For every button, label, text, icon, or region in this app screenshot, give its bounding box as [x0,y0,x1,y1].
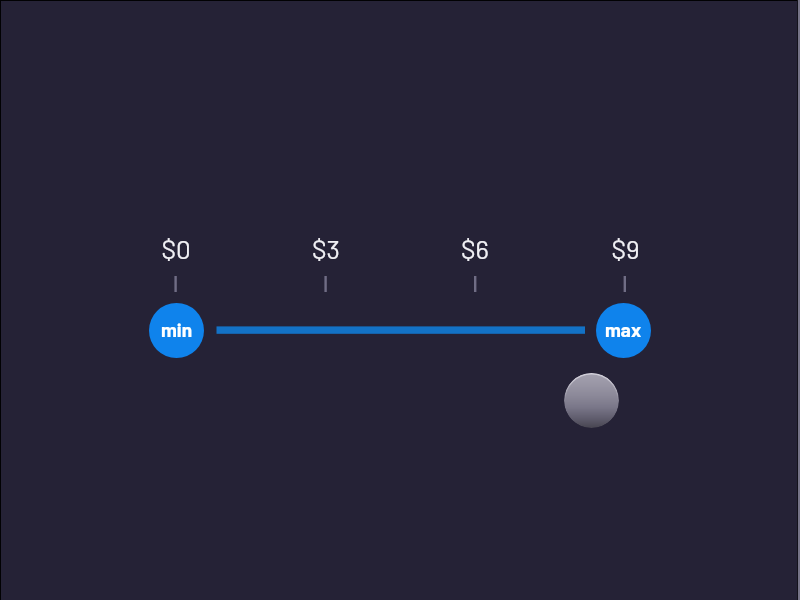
staticText: $0 [161,233,191,264]
button[interactable]: min [149,303,204,358]
staticText: min [161,318,193,341]
button[interactable]: Drag handle [564,373,619,428]
staticText: $6 [461,233,489,264]
staticText: max [605,318,642,341]
staticText: $3 [312,233,340,264]
button[interactable]: max [596,303,651,358]
staticText: $9 [611,233,640,264]
